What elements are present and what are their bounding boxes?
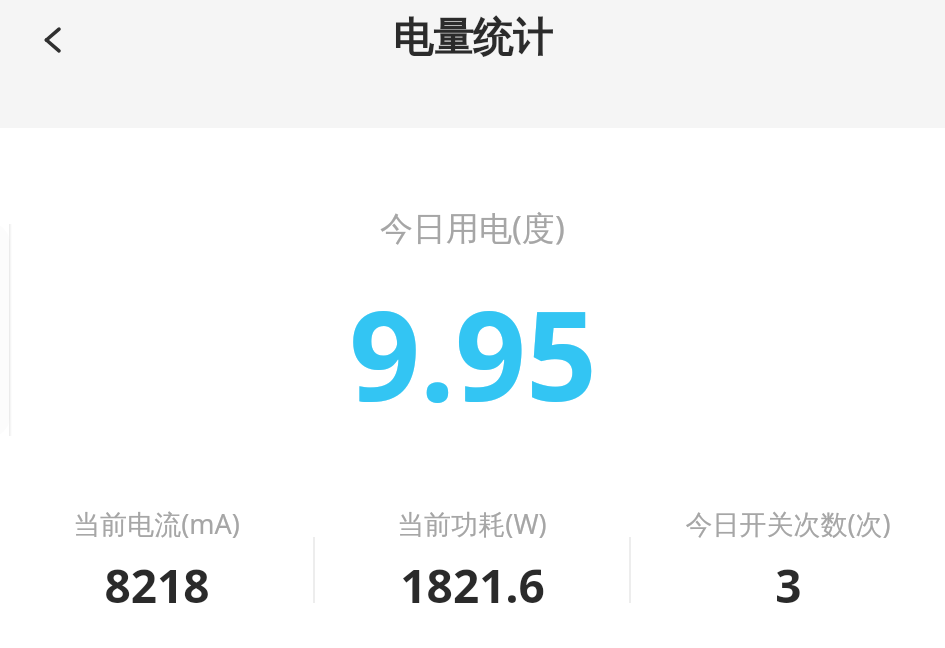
staticText: 电量统计 [393,12,553,62]
staticText: 8218 [104,554,210,615]
staticText: 当前功耗(W) [397,505,547,542]
staticText: 1821.6 [400,554,545,615]
button[interactable]: 今日开关次数(次) [631,505,945,615]
staticText: 今日用电(度) [380,205,565,250]
staticText: 当前电流(mA) [73,505,240,542]
staticText: 今日开关次数(次) [685,505,891,542]
button[interactable]: Back [18,5,88,75]
staticText: 9.95 [349,268,597,437]
button[interactable]: 当前电流(mA) [0,505,313,615]
staticText: 3 [775,554,802,615]
button[interactable]: 当前功耗(W) [315,505,629,615]
